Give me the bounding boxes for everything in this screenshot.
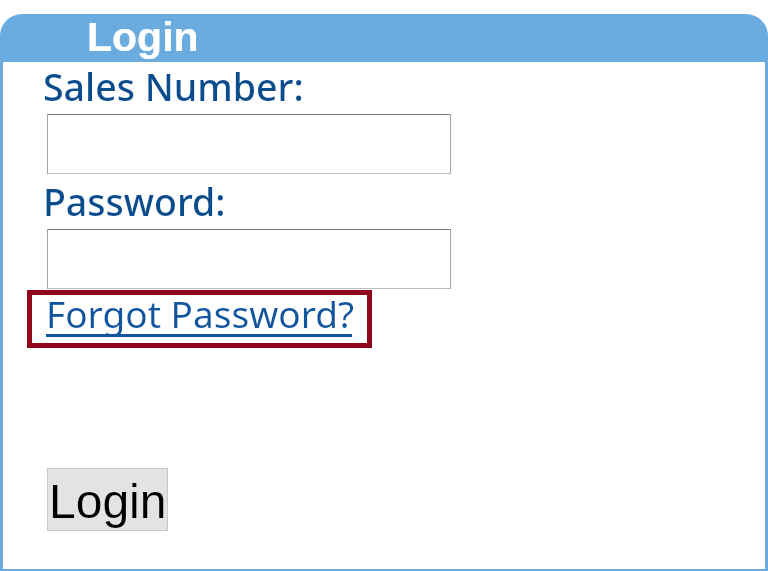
staticText: Forgot Password?: [46, 288, 355, 338]
staticText: Login: [49, 475, 167, 529]
staticText: Login: [87, 14, 199, 60]
staticText: Password:: [43, 176, 226, 227]
button[interactable]: Login: [47, 468, 168, 531]
button[interactable]: Forgot Password?: [27, 290, 372, 348]
button[interactable]: Password input field: [47, 229, 451, 289]
staticText: Sales Number:: [43, 61, 304, 112]
button[interactable]: Sales Number input field: [47, 114, 451, 174]
